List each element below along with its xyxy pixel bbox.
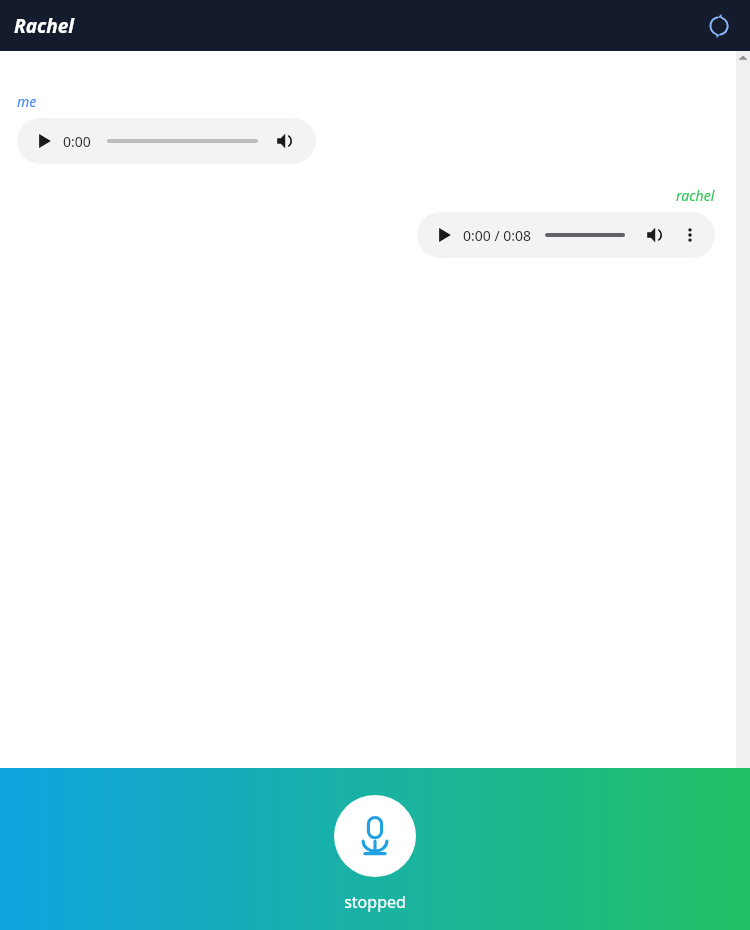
- button[interactable]: Play: [417, 212, 715, 258]
- button[interactable]: Record voice message: [334, 795, 416, 877]
- button[interactable]: Refresh: [702, 9, 736, 43]
- button[interactable]: More options: [679, 224, 701, 246]
- button[interactable]: Mute: [274, 129, 298, 153]
- staticText: 0:00 / 0:08: [463, 226, 532, 245]
- button[interactable]: Mute: [644, 223, 668, 247]
- button[interactable]: Play: [435, 225, 455, 245]
- button[interactable]: Play: [35, 131, 55, 151]
- staticText: 0:00: [63, 132, 91, 151]
- staticText: rachel: [676, 186, 715, 205]
- staticText: stopped: [344, 891, 406, 913]
- button[interactable]: Play: [17, 118, 316, 164]
- staticText: me: [17, 92, 37, 111]
- staticText: Rachel: [14, 13, 74, 39]
